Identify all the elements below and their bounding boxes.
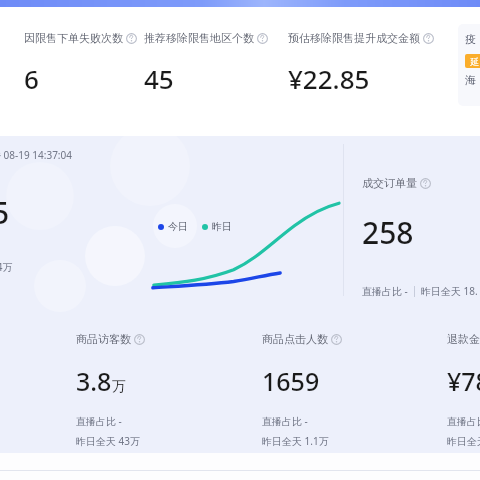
staticText: 商品访客数 xyxy=(76,332,131,346)
staticText: 退款金额 xyxy=(447,332,480,346)
staticText: 因限售下单失败次数 xyxy=(24,31,123,45)
staticText: 直播占比 - xyxy=(447,414,480,428)
staticText: ¥78 xyxy=(447,364,480,398)
staticText: 直播占比 - xyxy=(362,284,408,298)
staticText: 延 xyxy=(470,56,479,67)
staticText: 万 xyxy=(112,378,126,396)
staticText: ¥22.85 xyxy=(288,61,370,96)
other: Help xyxy=(420,178,431,189)
staticText: .4万 xyxy=(0,260,13,274)
staticText: 1659 xyxy=(262,364,320,398)
staticText: 昨日 xyxy=(212,220,232,233)
button[interactable]: 推荐移除限售地区个数 xyxy=(144,31,268,96)
button[interactable]: 成交订单量 xyxy=(362,176,431,253)
staticText: 5 xyxy=(0,192,10,233)
staticText: 昨日全天 1.1万 xyxy=(262,434,329,448)
button[interactable]: 退款金额 xyxy=(447,332,480,448)
other: Help xyxy=(126,33,137,44)
staticText: 昨日全天 43万 xyxy=(76,434,141,448)
staticText: 直播占比 - xyxy=(76,414,122,428)
staticText: 今日 xyxy=(168,220,188,233)
staticText: 海 xyxy=(465,73,476,87)
button[interactable]: 商品访客数 xyxy=(76,332,145,448)
staticText: 预估移除限售提升成交金额 xyxy=(288,31,420,45)
staticText: 昨日全天 - xyxy=(447,434,480,448)
staticText: 45 xyxy=(144,61,174,96)
staticText: 直播占比 - xyxy=(262,414,308,428)
button[interactable]: 疫 xyxy=(458,24,480,106)
other: Help xyxy=(257,33,268,44)
staticText: 疫 xyxy=(465,32,476,46)
staticText: 成交订单量 xyxy=(362,176,417,190)
staticText: 午 08-19 14:37:04 xyxy=(0,148,72,162)
other: Help xyxy=(331,334,342,345)
staticText: 6 xyxy=(24,61,39,96)
other: Help xyxy=(134,334,145,345)
staticText: 258 xyxy=(362,212,414,253)
staticText: 推荐移除限售地区个数 xyxy=(144,31,254,45)
button[interactable]: 商品点击人数 xyxy=(262,332,342,448)
staticText: 昨日全天 18. xyxy=(421,284,478,298)
other: Help xyxy=(423,33,434,44)
staticText: 商品点击人数 xyxy=(262,332,328,346)
button[interactable]: 预估移除限售提升成交金额 xyxy=(288,31,434,96)
staticText: 3.8 xyxy=(76,364,112,398)
button[interactable]: 因限售下单失败次数 xyxy=(24,31,137,96)
